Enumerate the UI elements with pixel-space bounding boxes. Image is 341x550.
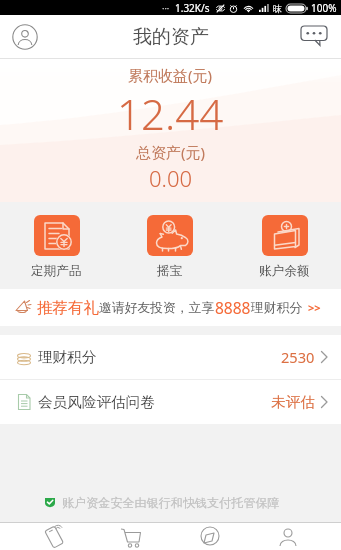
staticText: 我的资产 xyxy=(133,25,209,49)
staticText: 2530 xyxy=(281,347,315,367)
button[interactable]: Shop xyxy=(105,523,157,550)
staticText: 理财积分 xyxy=(251,300,303,316)
staticText: 总资产(元) xyxy=(136,142,206,162)
button[interactable]: Discover xyxy=(184,523,236,550)
staticText: >> xyxy=(308,300,321,315)
staticText: 昩 xyxy=(273,3,282,14)
staticText: ··· xyxy=(162,2,170,14)
staticText: 0.00 xyxy=(149,163,193,193)
button[interactable]: Profile xyxy=(12,24,38,50)
button[interactable]: 摇宝 xyxy=(147,202,193,279)
staticText: 账户余额 xyxy=(259,263,310,279)
button[interactable]: Invest xyxy=(27,523,79,550)
staticText: 100% xyxy=(311,1,337,15)
button[interactable]: 定期产品 xyxy=(31,202,82,279)
staticText: 1.32K/s xyxy=(175,1,210,15)
staticText: 会员风险评估问卷 xyxy=(38,393,155,411)
staticText: 8888 xyxy=(215,297,251,318)
staticText: 邀请好友投资，立享 xyxy=(99,300,215,316)
button[interactable]: 理财积分 xyxy=(0,335,341,379)
button[interactable]: 会员风险评估问卷 xyxy=(0,380,341,424)
staticText: 推荐有礼 xyxy=(37,298,99,318)
staticText: 12.44 xyxy=(117,85,224,142)
button[interactable]: 推荐有礼 xyxy=(0,289,341,326)
button[interactable]: Messages xyxy=(301,26,327,46)
staticText: 账户资金安全由银行和快钱支付托管保障 xyxy=(62,495,280,510)
button[interactable]: 账户余额 xyxy=(259,202,310,279)
button[interactable]: Mine xyxy=(262,523,314,550)
staticText: 摇宝 xyxy=(157,263,183,279)
staticText: 未评估 xyxy=(271,393,315,411)
staticText: 理财积分 xyxy=(38,348,97,366)
staticText: 累积收益(元) xyxy=(128,65,213,85)
staticText: 定期产品 xyxy=(31,263,82,279)
